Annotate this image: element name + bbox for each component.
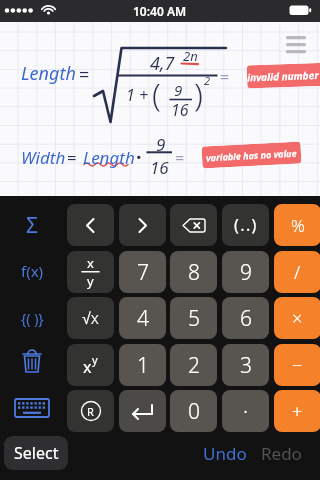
staticText: Width: [21, 146, 66, 169]
button[interactable]: (..): [222, 204, 269, 246]
staticText: 4,7: [150, 51, 175, 76]
button[interactable]: invalid number fo: [247, 62, 320, 88]
staticText: x: [83, 356, 92, 378]
staticText: 3: [240, 351, 252, 380]
button[interactable]: [4, 388, 60, 428]
staticText: 9: [174, 80, 183, 100]
staticText: x: [87, 254, 94, 272]
button[interactable]: +: [274, 390, 320, 432]
button[interactable]: Σ: [4, 205, 60, 245]
staticText: .: [243, 391, 249, 420]
button[interactable]: √x: [67, 297, 114, 339]
button[interactable]: variable has no value: [201, 141, 301, 169]
staticText: 5: [188, 304, 200, 333]
button[interactable]: Redo: [256, 438, 306, 468]
button[interactable]: 6: [222, 297, 269, 339]
staticText: 8: [188, 258, 200, 287]
button[interactable]: 1: [119, 344, 166, 386]
staticText: 1: [137, 351, 149, 380]
staticText: (..): [234, 214, 258, 236]
button[interactable]: Undo: [200, 438, 250, 468]
staticText: 4: [137, 304, 149, 333]
staticText: =: [67, 146, 77, 169]
staticText: 16: [150, 156, 169, 179]
button[interactable]: 2: [170, 344, 217, 386]
staticText: ): [194, 72, 203, 116]
staticText: 1 +: [126, 84, 149, 106]
staticText: %: [291, 214, 305, 237]
staticText: 9: [156, 133, 166, 156]
button[interactable]: [119, 390, 166, 432]
staticText: ×: [292, 306, 303, 331]
staticText: 10:40 AM: [133, 3, 187, 19]
staticText: 0: [188, 397, 200, 426]
staticText: =: [220, 66, 230, 88]
button[interactable]: %: [274, 204, 320, 246]
staticText: Length: [21, 61, 76, 86]
button[interactable]: x: [67, 251, 114, 293]
button[interactable]: −: [274, 344, 320, 386]
staticText: =: [175, 147, 185, 169]
staticText: √x: [82, 307, 99, 329]
staticText: variable has no value: [206, 147, 297, 163]
button[interactable]: {( )}: [4, 298, 60, 338]
staticText: 2: [204, 73, 211, 88]
staticText: 9: [240, 258, 252, 287]
staticText: 16: [171, 99, 189, 121]
button[interactable]: 0: [170, 390, 217, 432]
staticText: Redo: [261, 442, 302, 465]
button[interactable]: .: [222, 390, 269, 432]
staticText: /: [294, 260, 301, 285]
staticText: (: [152, 72, 161, 116]
button[interactable]: [119, 204, 166, 246]
staticText: 2: [188, 351, 200, 380]
staticText: Σ: [26, 211, 39, 240]
button[interactable]: [4, 342, 60, 382]
staticText: {( )}: [21, 309, 44, 328]
button[interactable]: [283, 34, 309, 56]
staticText: Select: [14, 442, 59, 464]
button[interactable]: ×: [274, 297, 320, 339]
staticText: ·: [136, 143, 142, 170]
button[interactable]: 8: [170, 251, 217, 293]
staticText: invalid number fo: [247, 67, 320, 84]
button[interactable]: 9: [222, 251, 269, 293]
button[interactable]: 7: [119, 251, 166, 293]
button[interactable]: R: [67, 390, 114, 432]
staticText: y: [87, 272, 94, 290]
staticText: f(x): [21, 261, 44, 281]
button[interactable]: Select: [4, 436, 68, 470]
staticText: Undo: [203, 442, 247, 465]
staticText: +: [292, 399, 303, 424]
staticText: 2n: [183, 47, 198, 65]
button[interactable]: [170, 204, 217, 246]
staticText: =: [79, 62, 90, 87]
button[interactable]: 5: [170, 297, 217, 339]
staticText: −: [292, 353, 303, 378]
button[interactable]: 3: [222, 344, 269, 386]
button[interactable]: /: [274, 251, 320, 293]
button[interactable]: [67, 204, 114, 246]
staticText: 7: [137, 258, 149, 287]
button[interactable]: 4: [119, 297, 166, 339]
staticText: y: [92, 352, 98, 367]
staticText: 6: [240, 304, 252, 333]
staticText: Length: [83, 146, 135, 169]
staticText: R: [87, 404, 94, 419]
button[interactable]: x: [67, 344, 114, 386]
button[interactable]: f(x): [4, 251, 60, 291]
